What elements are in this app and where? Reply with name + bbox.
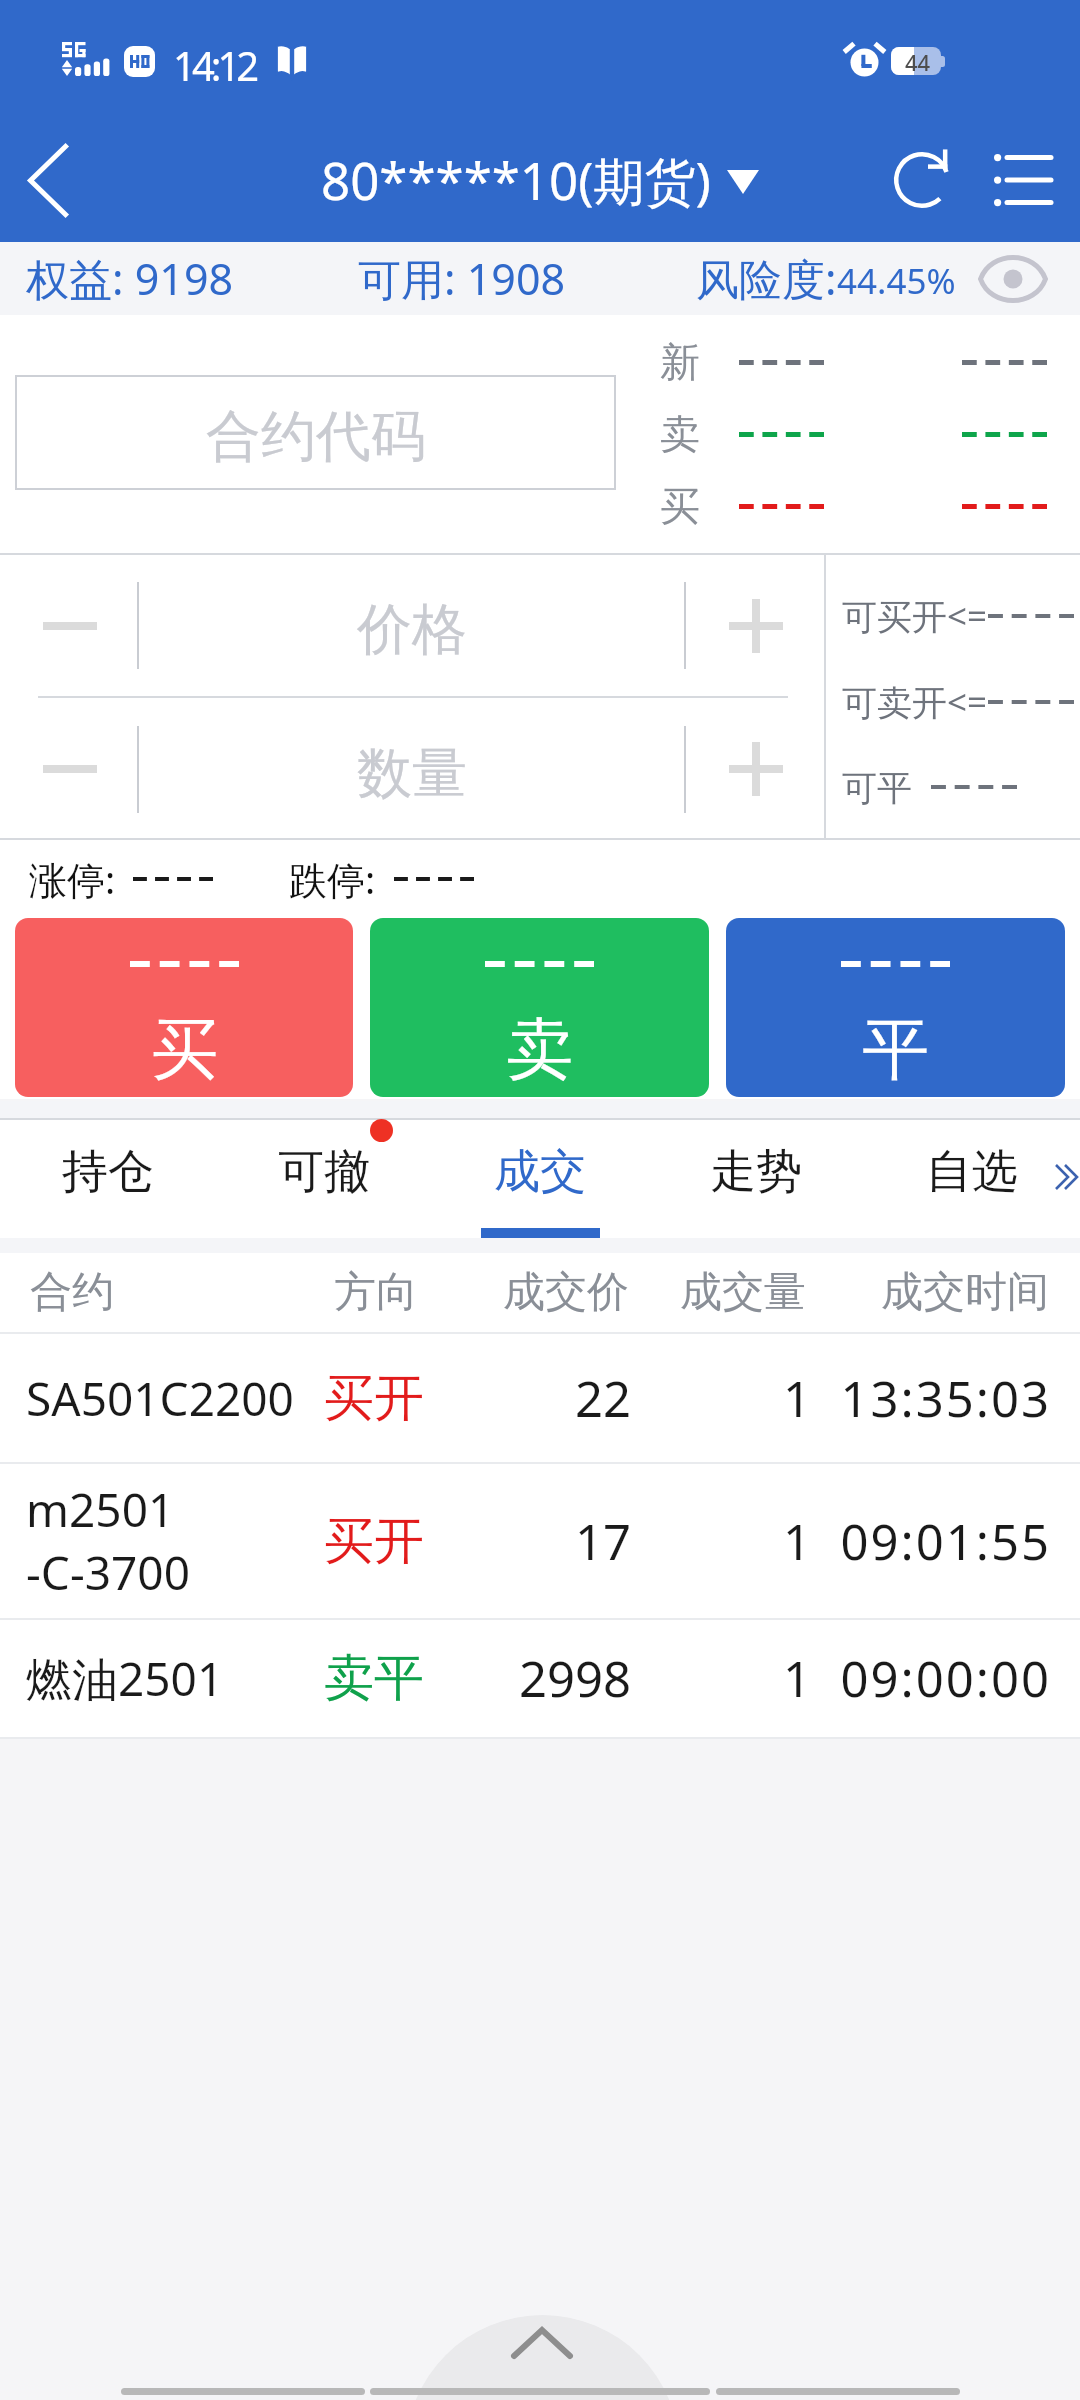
- staticText: 持仓: [62, 1143, 154, 1201]
- staticText: 可平: [842, 763, 931, 811]
- button[interactable]: 买: [15, 918, 353, 1097]
- button[interactable]: 80*****10(期货): [317, 145, 763, 215]
- button[interactable]: m2501: [0, 1464, 1080, 1618]
- staticText: 可买开<=: [842, 592, 988, 640]
- button[interactable]: 走势: [648, 1120, 864, 1238]
- staticText: 买: [660, 481, 703, 531]
- staticText: 卖: [506, 1007, 573, 1091]
- staticText: 2998: [430, 1645, 631, 1712]
- staticText: 可用: 1908: [358, 249, 566, 308]
- staticText: m2501: [26, 1478, 175, 1541]
- staticText: 卖: [660, 409, 703, 459]
- button[interactable]: 可撤: [216, 1120, 432, 1238]
- staticText: 新: [660, 337, 703, 387]
- staticText: 买开: [324, 1510, 424, 1573]
- button[interactable]: 卖: [370, 918, 709, 1097]
- staticText: 成交: [494, 1143, 586, 1201]
- staticText: 数量: [357, 739, 467, 808]
- staticText: 平: [862, 1007, 929, 1091]
- staticText: 13:35:03: [820, 1365, 1051, 1432]
- staticText: 80*****10(期货): [321, 145, 711, 215]
- staticText: 涨停:: [29, 853, 116, 905]
- button[interactable]: Refresh: [880, 118, 964, 242]
- staticText: 成交价: [368, 1266, 629, 1319]
- button[interactable]: 燃油2501: [0, 1620, 1080, 1737]
- staticText: 1: [660, 1645, 811, 1712]
- button[interactable]: Toggle balance visibility: [975, 242, 1057, 315]
- staticText: 风险度:: [696, 249, 837, 308]
- staticText: 燃油2501: [26, 1647, 224, 1710]
- staticText: 成交时间: [820, 1266, 1049, 1319]
- staticText: 14:12: [173, 38, 256, 92]
- staticText: SA501C2200: [26, 1367, 294, 1430]
- staticText: 17: [430, 1508, 631, 1575]
- button[interactable]: 数量: [139, 698, 684, 840]
- button[interactable]: Increase 数量: [686, 698, 824, 840]
- button[interactable]: SA501C2200: [0, 1334, 1080, 1462]
- staticText: 合约: [30, 1266, 114, 1319]
- button[interactable]: Decrease 数量: [0, 698, 137, 840]
- staticText: 合约代码: [206, 402, 426, 471]
- staticText: 可卖开<=: [842, 678, 988, 726]
- button[interactable]: Back: [0, 118, 96, 242]
- staticText: -C-3700: [26, 1541, 190, 1604]
- button[interactable]: Decrease 价格: [0, 555, 137, 696]
- button[interactable]: 成交: [432, 1120, 648, 1238]
- staticText: 跌停:: [289, 853, 376, 905]
- button[interactable]: 持仓: [0, 1120, 216, 1238]
- staticText: 价格: [357, 595, 467, 664]
- staticText: 1: [660, 1508, 811, 1575]
- staticText: 买开: [324, 1367, 424, 1430]
- staticText: 44: [905, 47, 931, 75]
- staticText: 卖平: [324, 1647, 424, 1710]
- staticText: 44.45%: [837, 257, 956, 305]
- staticText: 09:00:00: [820, 1645, 1051, 1712]
- button[interactable]: 自选: [864, 1120, 1080, 1238]
- staticText: 可撤: [278, 1143, 370, 1201]
- staticText: 自选: [926, 1143, 1018, 1201]
- staticText: 权益: 9198: [26, 249, 234, 308]
- staticText: 09:01:55: [820, 1508, 1051, 1575]
- staticText: 走势: [710, 1143, 802, 1201]
- button[interactable]: 合约代码: [15, 375, 616, 490]
- button[interactable]: 价格: [139, 555, 684, 696]
- staticText: 22: [430, 1365, 631, 1432]
- staticText: 成交量: [645, 1266, 806, 1319]
- button[interactable]: Menu: [964, 118, 1080, 242]
- button[interactable]: 平: [726, 918, 1065, 1097]
- button[interactable]: Increase 价格: [686, 555, 824, 696]
- staticText: 1: [660, 1365, 811, 1432]
- button[interactable]: More tabs: [1032, 1158, 1080, 1208]
- staticText: 买: [151, 1007, 218, 1091]
- staticText: 方向: [334, 1266, 418, 1319]
